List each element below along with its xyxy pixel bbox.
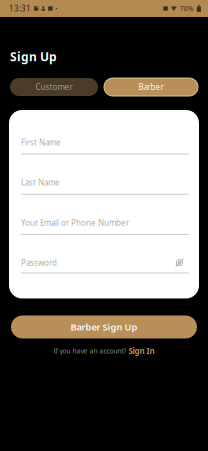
button[interactable]: Your Email or Phone Number: [21, 217, 189, 235]
staticText: If you have an account?: [53, 346, 126, 355]
staticText: Customer: [35, 82, 72, 92]
button[interactable]: Customer: [10, 78, 98, 96]
button[interactable]: Sign In: [128, 345, 154, 356]
staticText: Barber Sign Up: [70, 321, 137, 333]
button[interactable]: Barber Sign Up: [11, 315, 197, 338]
staticText: Your Email or Phone Number: [21, 217, 129, 228]
button[interactable]: Password: [21, 257, 189, 273]
button[interactable]: Barber: [104, 78, 198, 96]
staticText: Barber: [138, 82, 163, 92]
staticText: 13:31: [9, 3, 31, 14]
button[interactable]: First Name: [21, 137, 189, 155]
staticText: Sign In: [128, 345, 154, 356]
staticText: Password: [21, 257, 57, 268]
staticText: Sign Up: [10, 48, 57, 64]
staticText: First Name: [21, 137, 61, 148]
button[interactable]: Last Name: [21, 177, 189, 195]
staticText: 70%: [180, 4, 194, 13]
button[interactable]: Show password: [174, 258, 189, 267]
staticText: Last Name: [21, 177, 60, 188]
